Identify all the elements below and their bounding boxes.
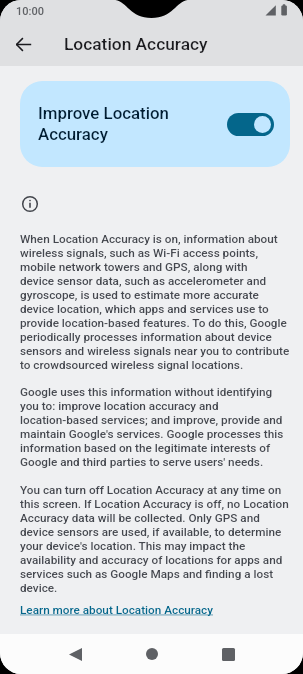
staticText: When Location Accuracy is on, informatio…	[20, 232, 290, 372]
staticText: Improve Location Accuracy	[38, 103, 227, 145]
staticText: Location Accuracy	[64, 34, 208, 54]
staticText: You can turn off Location Accuracy at an…	[20, 483, 289, 595]
button[interactable]: Recent apps	[206, 634, 250, 674]
button[interactable]: Home	[130, 634, 174, 674]
staticText: Google uses this information without ide…	[20, 385, 284, 469]
button[interactable]: Learn more about Location Accuracy	[20, 603, 213, 617]
button[interactable]: Back	[53, 634, 97, 674]
button[interactable]: Improve Location Accuracy	[227, 113, 274, 136]
staticText: 10:00	[16, 5, 44, 18]
button[interactable]: Improve Location Accuracy	[20, 81, 290, 167]
button[interactable]: Navigate up	[5, 26, 41, 62]
